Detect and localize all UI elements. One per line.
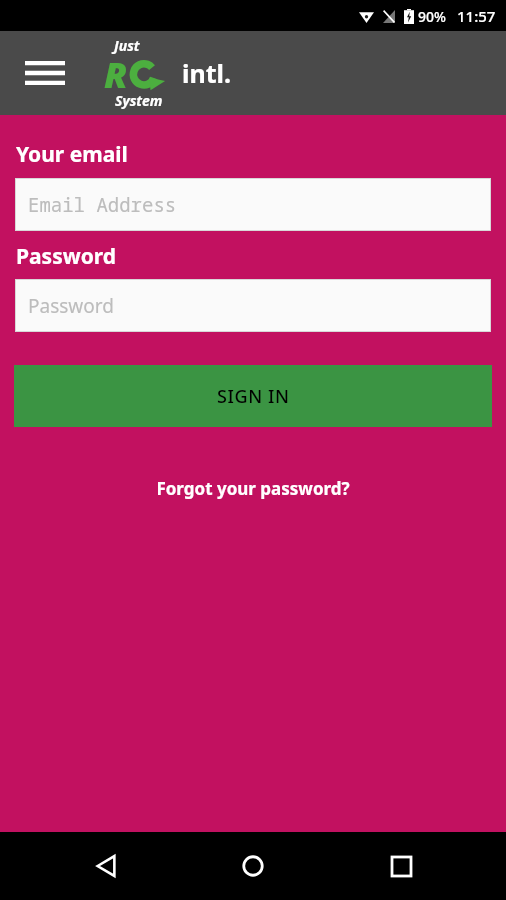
staticText: Forgot your password? <box>156 477 350 500</box>
button[interactable]: Password <box>15 279 491 332</box>
staticText: Just <box>114 36 140 55</box>
button[interactable]: Recent apps <box>359 832 443 900</box>
staticText: SIGN IN <box>217 384 290 409</box>
staticText: Password <box>28 293 114 319</box>
staticText: Password <box>16 242 117 271</box>
button[interactable]: Forgot your password? <box>142 471 364 506</box>
button[interactable]: Home <box>211 832 295 900</box>
staticText: intl. <box>182 56 232 90</box>
staticText: System <box>115 91 163 110</box>
staticText: 11:57 <box>457 6 496 26</box>
staticText: Email Address <box>28 192 177 218</box>
button[interactable]: Email Address <box>15 178 491 231</box>
button[interactable]: SIGN IN <box>14 365 492 427</box>
button[interactable]: Open navigation menu <box>16 44 74 102</box>
button[interactable]: Back <box>64 832 148 900</box>
staticText: R <box>104 50 128 99</box>
staticText: Your email <box>16 140 128 169</box>
staticText: 90% <box>418 7 446 26</box>
